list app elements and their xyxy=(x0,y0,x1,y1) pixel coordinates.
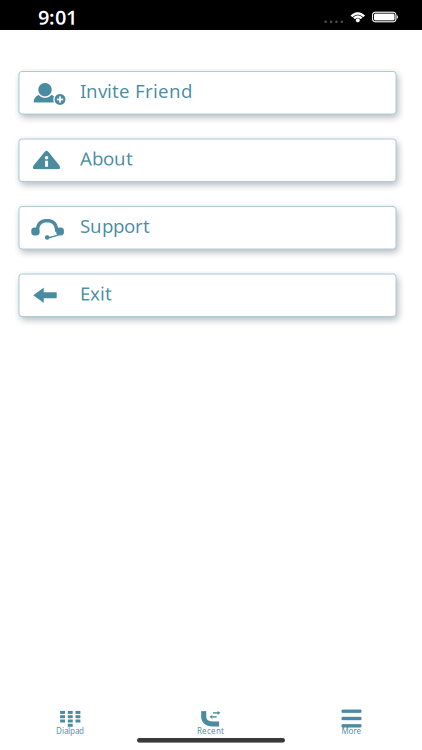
staticText: About xyxy=(80,146,133,171)
button[interactable]: More xyxy=(341,710,362,738)
button[interactable]: About xyxy=(19,139,396,181)
staticText: Dialpad xyxy=(56,725,84,736)
button[interactable]: Invite Friend xyxy=(19,71,396,114)
staticText: 9:01 xyxy=(38,4,77,30)
staticText: More xyxy=(341,725,361,736)
button[interactable]: Dialpad xyxy=(56,710,84,738)
staticText: Recent xyxy=(197,725,224,736)
staticText: Support xyxy=(80,213,150,238)
staticText: Exit xyxy=(80,281,112,306)
button[interactable]: Recent xyxy=(197,710,224,738)
button[interactable]: Support xyxy=(19,206,396,249)
staticText: Invite Friend xyxy=(80,78,192,103)
button[interactable]: Exit xyxy=(19,274,396,316)
